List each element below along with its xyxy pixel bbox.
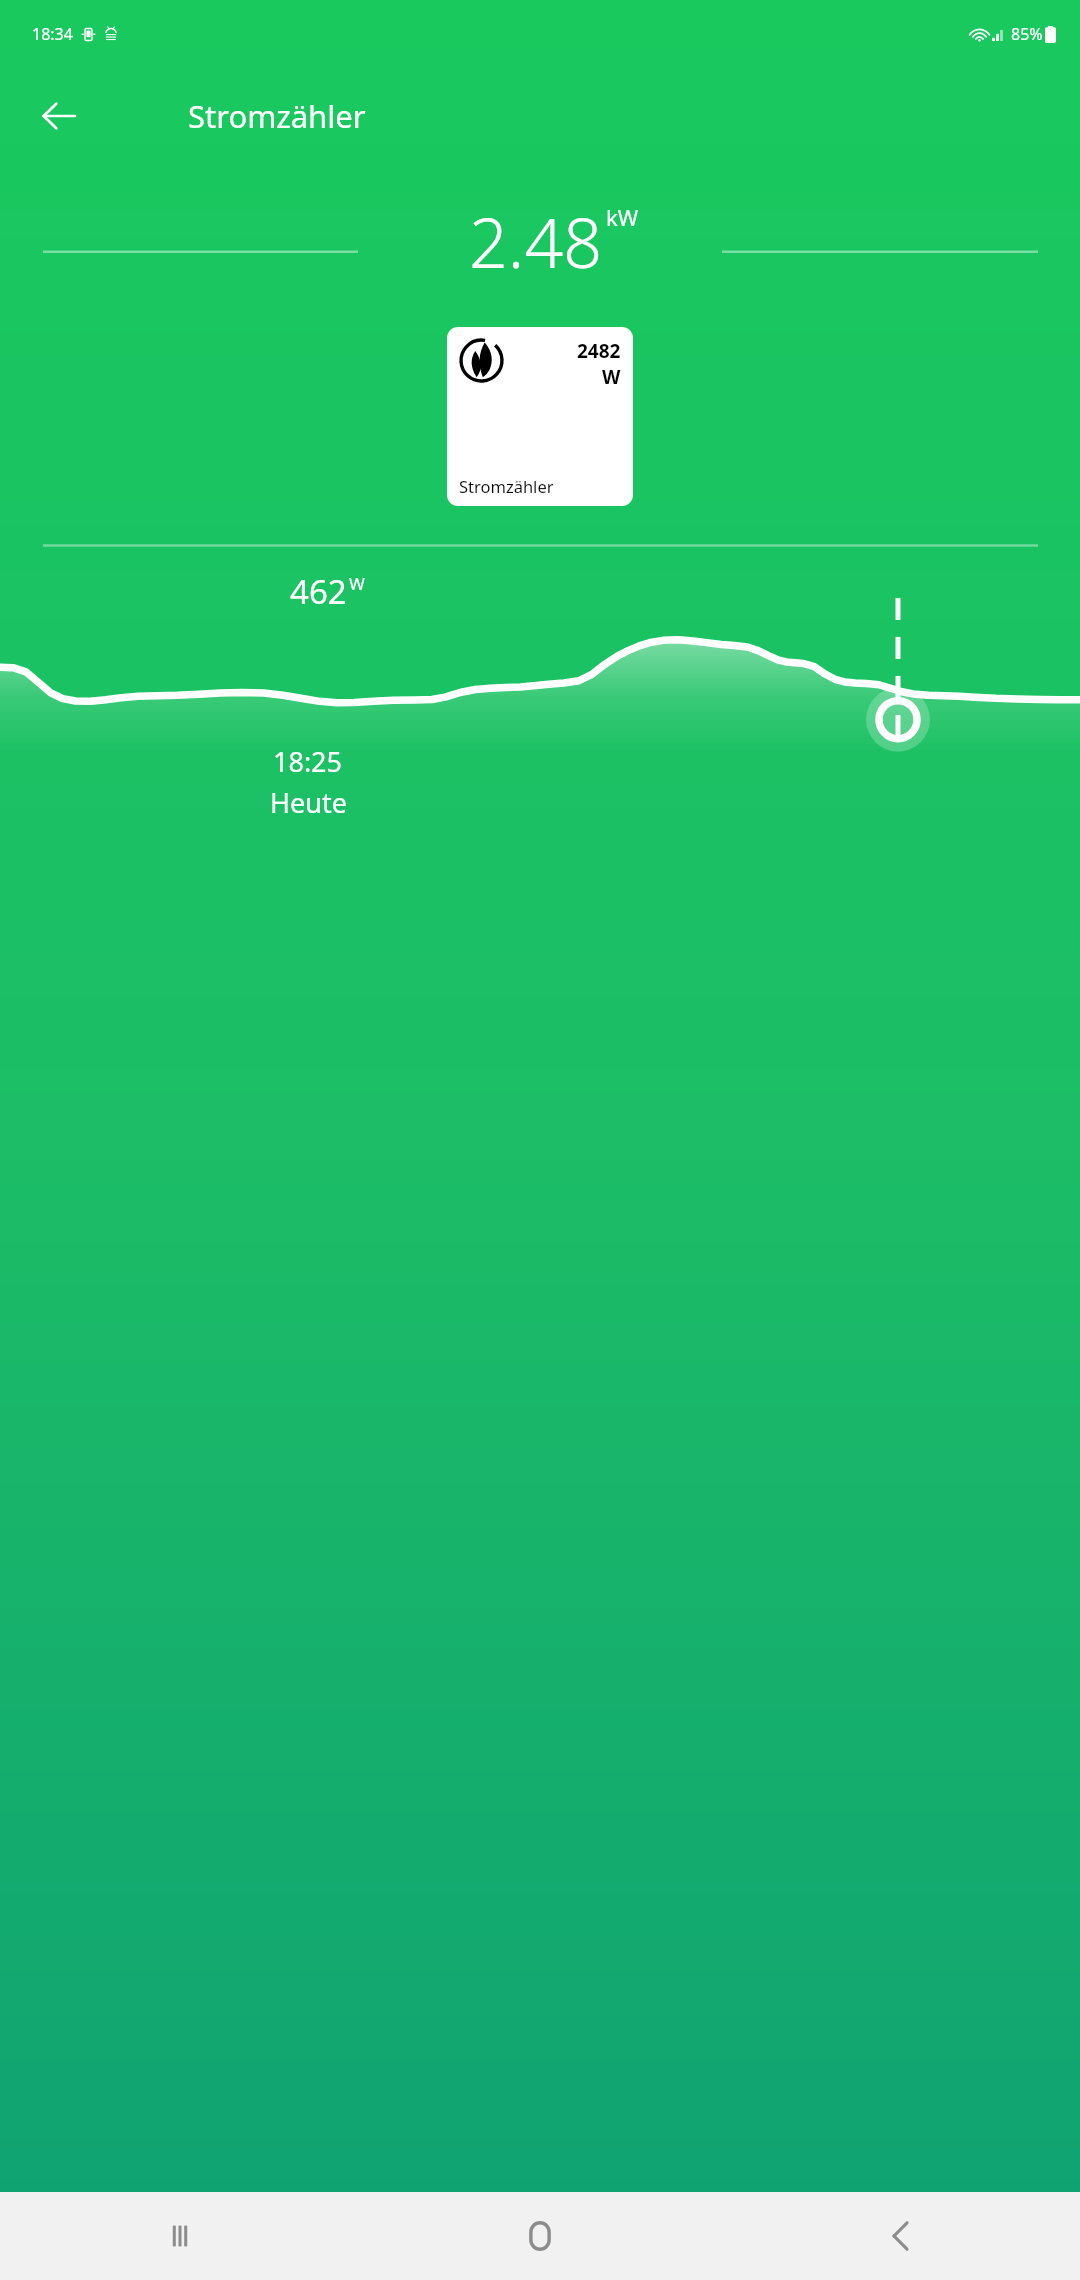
staticText: kW [606, 202, 639, 232]
button[interactable]: Home [360, 2192, 720, 2280]
staticText: 85% [1011, 23, 1043, 45]
button[interactable]: Recent apps [0, 2192, 360, 2280]
staticText: 2.48 [469, 195, 603, 288]
staticText: W [602, 364, 621, 390]
staticText: 18:25 [273, 743, 343, 780]
staticText: 2482 [577, 338, 621, 364]
button[interactable]: 2482 [447, 327, 633, 506]
staticText: 18:34 [32, 23, 73, 45]
staticText: Stromzähler [188, 95, 366, 137]
staticText: Heute [270, 784, 347, 821]
staticText: 462 [290, 569, 347, 614]
button[interactable]: Back [720, 2192, 1080, 2280]
button[interactable]: Back [26, 83, 92, 149]
staticText: Stromzähler [459, 475, 554, 497]
staticText: W [349, 572, 365, 595]
